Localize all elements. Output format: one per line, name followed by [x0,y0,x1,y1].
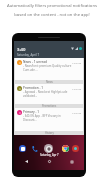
staticText: 1:34 AM [72,61,82,64]
button[interactable]: News - 1 unread notification(s) [15,58,83,80]
button[interactable]: Chrome [62,145,69,152]
button[interactable]: Recents [69,159,74,164]
button[interactable]: Messages [19,145,26,152]
staticText: Saturday, Apr 7 [40,153,59,157]
staticText: 1:34 AM [72,87,82,90]
button[interactable]: Home [47,159,52,164]
staticText: Automatically filters promotional notifi… [7,3,97,9]
staticText: News [46,80,53,84]
button[interactable]: Camera [72,145,79,152]
staticText: 1:34 AM [72,111,82,114]
button[interactable]: Promotion - 1 unread notific... [15,84,83,104]
staticText: - $40.0% App - BFF Viscany in [23,114,61,118]
staticText: - NewsFont: premium Quality culture [23,64,72,68]
staticText: Cum.ude ... [23,68,38,72]
staticText: Primary - 1 unread notificatio... [23,110,47,114]
staticText: based on the content - not on the app! [14,12,90,18]
staticText: 3:40 [17,47,26,53]
button[interactable]: Phone [31,145,38,152]
staticText: Promotion - 1 unread notific... [23,86,47,90]
button[interactable]: Back [24,159,29,164]
staticText: validated... [23,94,38,98]
staticText: - Agrawal - Now best Highlyst.ude [23,90,68,94]
staticText: News - 1 unread notification(s) [23,60,47,64]
staticText: Discount... [23,118,37,122]
staticText: Saturday, April 7 [17,53,40,57]
button[interactable]: Search [44,144,53,153]
button[interactable]: Primary - 1 unread notificatio... [15,108,83,131]
staticText: Promotions [42,104,57,108]
staticText: History [45,131,54,135]
